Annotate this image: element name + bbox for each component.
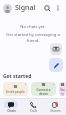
staticText: Get started [3,73,32,80]
button[interactable]: New chat [49,58,63,72]
staticText: Story [60,88,65,96]
button[interactable]: Search [41,2,53,14]
button[interactable]: Chats [0,99,22,115]
button[interactable]: Stories [44,99,66,115]
button[interactable]: Dismiss [52,83,55,86]
staticText: Invite people [4,90,27,94]
button[interactable]: Dismiss [24,83,27,86]
button[interactable]: More options [53,3,63,13]
staticText: Get started by messaging a friend. [6,32,60,43]
button[interactable]: Dismiss [62,83,65,86]
button[interactable]: Invite people [3,82,28,96]
staticText: Connect a device [32,88,55,96]
button[interactable]: Story [59,82,66,96]
staticText: Stories [50,109,61,113]
staticText: No chats yet. [6,24,60,30]
staticText: Chats [7,109,16,113]
button[interactable]: Calls [22,99,44,115]
button[interactable]: Camera [50,43,62,55]
button[interactable]: Profile [3,4,12,13]
staticText: Calls [30,109,37,113]
button[interactable]: Connect a device [31,82,56,96]
staticText: Signal [15,3,36,13]
